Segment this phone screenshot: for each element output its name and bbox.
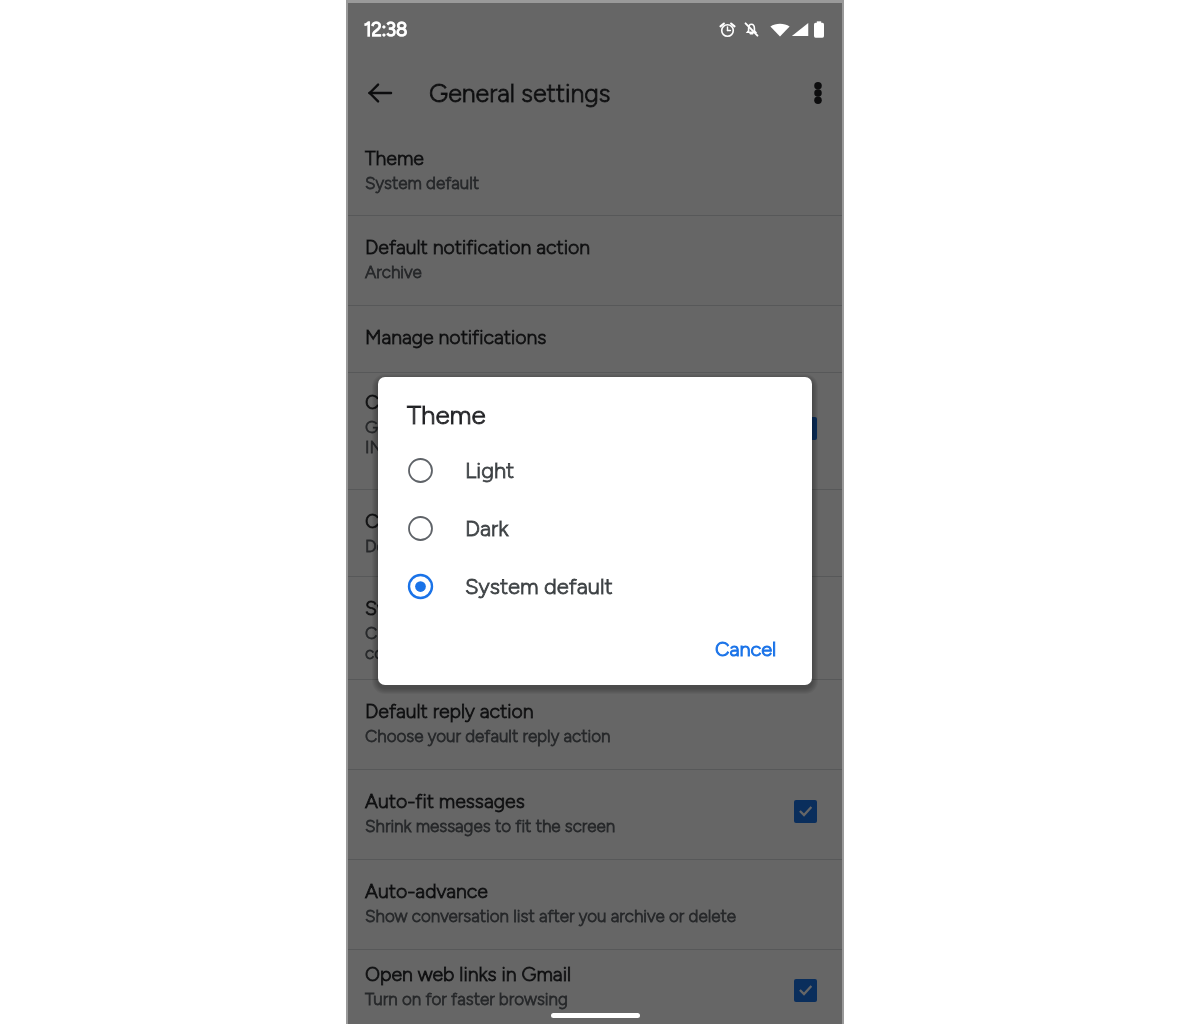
staticText: System default (465, 573, 613, 599)
staticText: Shrink messages to fit the screen (365, 816, 616, 836)
staticText: Default reply action (365, 699, 534, 722)
button[interactable]: Open web links in Gmail (348, 943, 842, 1024)
staticText: Auto-fit messages (365, 789, 525, 812)
button[interactable]: Toggle Auto-fit messages (794, 800, 817, 823)
staticText: Cancel (715, 637, 777, 661)
button[interactable]: Swipe actions (348, 577, 842, 679)
staticText: Default notification action (365, 235, 591, 258)
staticText: Theme (407, 399, 486, 430)
button[interactable]: Cancel (707, 629, 785, 669)
staticText: Light (465, 457, 515, 483)
button[interactable]: System default (378, 557, 812, 615)
staticText: Dark (465, 515, 509, 541)
staticText: Manage notifications (365, 325, 547, 348)
button[interactable]: Default notification action (348, 216, 842, 305)
staticText: System default (365, 173, 480, 193)
staticText: conversation list (365, 643, 488, 663)
staticText: Cancel (715, 637, 777, 661)
staticText: Open web links in Gmail (365, 962, 572, 985)
staticText: Conversation view (365, 390, 525, 413)
staticText: Show conversation list after you archive… (365, 906, 736, 926)
button[interactable]: Conversation list density (348, 490, 842, 576)
staticText: Default notification action (365, 235, 591, 258)
staticText: Light (465, 457, 515, 483)
staticText: Group emails into conversations (365, 417, 608, 437)
staticText: Choose your default reply action (365, 726, 611, 746)
staticText: Default reply action (365, 699, 534, 722)
staticText: Swipe actions (365, 596, 487, 619)
staticText: 12:38 (364, 18, 408, 40)
staticText: Show conversation list after you archive… (365, 906, 736, 926)
staticText: IN THIS VIEW (365, 437, 471, 457)
button[interactable]: Back (356, 69, 404, 117)
staticText: Conversation list density (365, 509, 578, 532)
staticText: Turn on for faster browsing (365, 989, 568, 1009)
button[interactable]: More options (796, 71, 840, 115)
staticText: Swipe actions (365, 596, 487, 619)
button[interactable]: Conversation view (348, 373, 842, 489)
staticText: Choose actions when swiping in (365, 623, 608, 643)
staticText: Shrink messages to fit the screen (365, 816, 616, 836)
staticText: General settings (429, 78, 611, 108)
staticText: Theme (365, 146, 424, 169)
button[interactable]: Default reply action (348, 680, 842, 769)
staticText: System default (465, 573, 613, 599)
staticText: Theme (407, 399, 486, 430)
staticText: Turn on for faster browsing (365, 989, 568, 1009)
button[interactable]: Theme (348, 127, 842, 215)
staticText: Auto-fit messages (365, 789, 525, 812)
staticText: conversation list (365, 643, 488, 663)
staticText: Default (365, 536, 420, 556)
staticText: General settings (429, 78, 611, 108)
staticText: IN THIS VIEW (365, 437, 471, 457)
staticText: Archive (365, 262, 422, 282)
button[interactable]: Auto-fit messages (348, 770, 842, 859)
staticText: Auto-advance (365, 879, 488, 902)
staticText: Open web links in Gmail (365, 962, 572, 985)
staticText: Choose actions when swiping in (365, 623, 608, 643)
button[interactable]: Toggle Open web links in Gmail (794, 979, 817, 1002)
staticText: 12:38 (364, 18, 408, 40)
staticText: Default (365, 536, 420, 556)
staticText: Group emails into conversations (365, 417, 608, 437)
staticText: Theme (365, 146, 424, 169)
staticText: Choose your default reply action (365, 726, 611, 746)
staticText: Archive (365, 262, 422, 282)
staticText: Conversation view (365, 390, 525, 413)
button[interactable]: Manage notifications (348, 306, 842, 372)
staticText: Conversation list density (365, 509, 578, 532)
staticText: Manage notifications (365, 325, 547, 348)
button[interactable]: Auto-advance (348, 860, 842, 949)
staticText: System default (365, 173, 480, 193)
button[interactable]: Dark (378, 499, 812, 557)
staticText: Auto-advance (365, 879, 488, 902)
staticText: Dark (465, 515, 509, 541)
button[interactable]: Light (378, 441, 812, 499)
button[interactable]: Toggle Conversation view (794, 417, 817, 440)
